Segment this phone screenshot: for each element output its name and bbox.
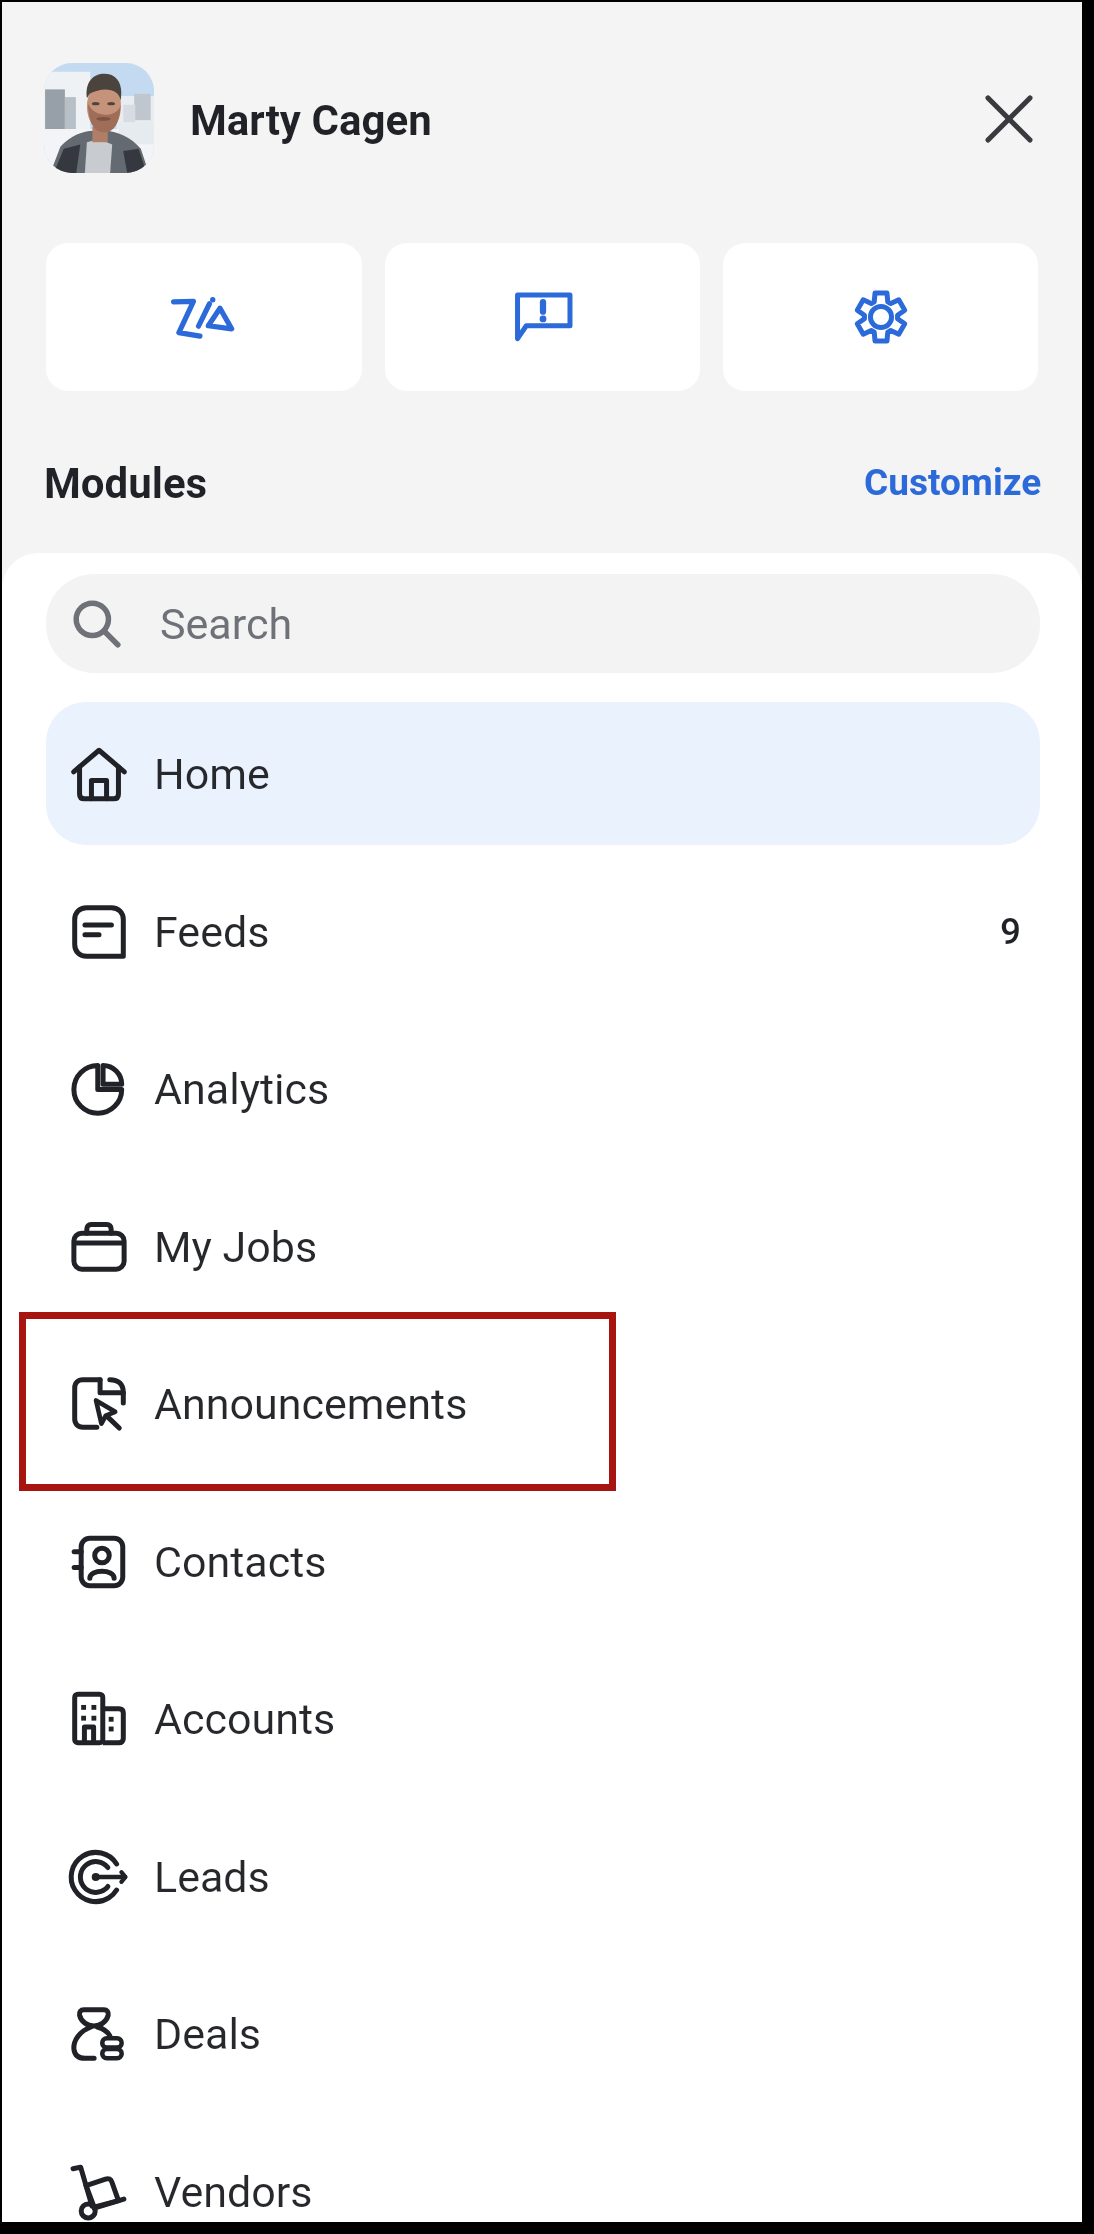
staticText: Marty Cagen xyxy=(190,96,432,145)
staticText: Home xyxy=(154,749,270,799)
button[interactable]: Contacts xyxy=(46,1490,1040,1633)
button[interactable]: Leads xyxy=(46,1805,1040,1948)
button[interactable]: My Jobs xyxy=(46,1175,1040,1318)
staticText: Vendors xyxy=(154,2167,313,2217)
button[interactable]: Analytics xyxy=(46,1017,1040,1160)
button[interactable]: Settings xyxy=(723,243,1038,391)
button[interactable]: Customize xyxy=(864,461,1042,504)
staticText: Search xyxy=(160,599,293,649)
staticText: Modules xyxy=(44,459,208,508)
button[interactable]: Feedback xyxy=(385,243,700,391)
staticText: Contacts xyxy=(154,1537,327,1587)
button[interactable]: Deals xyxy=(46,1962,1040,2105)
staticText: Feeds xyxy=(154,907,270,957)
staticText: Analytics xyxy=(154,1064,330,1114)
button[interactable]: Close xyxy=(956,66,1062,172)
staticText: Deals xyxy=(154,2009,262,2059)
staticText: My Jobs xyxy=(154,1222,318,1272)
staticText: Accounts xyxy=(154,1694,336,1744)
button[interactable]: Announcements xyxy=(46,1332,1040,1475)
button[interactable]: Feeds xyxy=(46,860,1040,1003)
button[interactable]: Vendors xyxy=(46,2120,1040,2222)
button[interactable]: Search xyxy=(46,574,1040,673)
staticText: Customize xyxy=(864,461,1042,504)
staticText: Leads xyxy=(154,1852,270,1902)
staticText: Announcements xyxy=(154,1379,468,1429)
button[interactable]: Home xyxy=(46,702,1040,845)
button[interactable]: Zia xyxy=(46,243,362,391)
staticText: 9 xyxy=(1000,910,1022,953)
button[interactable]: Profile photo xyxy=(44,63,154,173)
button[interactable]: Accounts xyxy=(46,1647,1040,1790)
